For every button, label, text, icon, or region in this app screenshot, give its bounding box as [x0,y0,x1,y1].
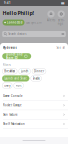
staticText: My devices [3,46,17,49]
button[interactable]: Lunch [19,68,31,74]
staticText: ▮▮▮ [61,1,64,4]
staticText: Launch and Share [4,77,27,80]
staticText: Lunch [21,69,29,73]
staticText: See all [56,46,65,49]
staticText: Search devices [8,32,26,36]
button[interactable]: Fruit [14,83,24,88]
button[interactable]: Dairy [2,83,12,88]
staticText: Skin Texture [3,113,18,116]
button[interactable]: Shelf Fabrication [0,119,68,129]
staticText: Shelf Fabrication [3,122,25,126]
button[interactable]: Search devices [2,31,66,37]
button[interactable]: Connected [2,19,24,25]
button[interactable]: Breakfast [2,68,17,74]
staticText: Filters [3,63,11,67]
staticText: Launch and Share ID [6,53,23,60]
staticText: Settings [58,18,65,25]
button[interactable]: Dinner [32,68,46,74]
staticText: Breakfast [4,69,15,73]
button[interactable]: Snacks [31,75,42,81]
staticText: Dinner [34,69,44,73]
staticText: 9:41 [4,1,11,5]
button[interactable]: Skin Texture [0,110,68,119]
button[interactable]: Launch and Share [2,75,29,81]
button[interactable]: Game Console [0,91,68,101]
staticText: Game Console [3,94,23,98]
staticText: Fruit [16,84,22,87]
staticText: Snacks [33,77,40,80]
button[interactable]: Rocket Garage [0,101,68,110]
staticText: Hello Philip! [2,9,34,17]
button[interactable]: Alerts [47,10,55,22]
staticText: Rocket Garage [3,103,22,107]
button[interactable]: Settings [57,10,65,25]
staticText: Alerts [47,18,55,22]
staticText: Connected [7,21,23,24]
button[interactable]: Launch and Share ID [2,53,31,59]
staticText: Dairy [4,84,10,87]
staticText: Last sync 2m [26,21,41,24]
button[interactable]: See all [56,46,65,49]
